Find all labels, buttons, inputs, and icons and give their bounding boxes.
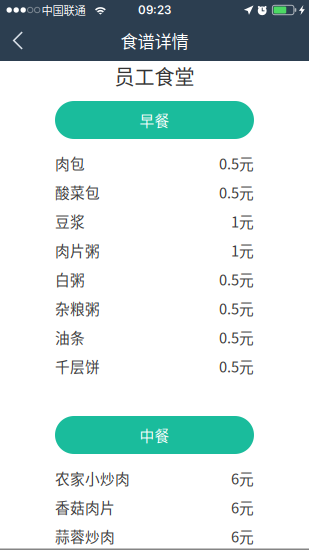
staticText: 杂粮粥 bbox=[55, 297, 100, 319]
button[interactable]: Back bbox=[0, 21, 39, 60]
staticText: 0.5元 bbox=[219, 297, 254, 319]
staticText: 蒜蓉炒肉 bbox=[55, 525, 115, 547]
staticText: 肉片粥 bbox=[55, 239, 100, 261]
staticText: 酸菜包 bbox=[55, 181, 100, 203]
staticText: 早餐 bbox=[139, 109, 169, 131]
staticText: 豆浆 bbox=[55, 210, 85, 232]
staticText: 0.5元 bbox=[219, 355, 254, 377]
staticText: 6元 bbox=[231, 525, 254, 547]
staticText: 0.5元 bbox=[219, 268, 254, 290]
staticText: 09:23 bbox=[138, 3, 171, 17]
staticText: 食谱详情 bbox=[120, 28, 188, 53]
staticText: 肉包 bbox=[55, 152, 85, 174]
staticText: 6元 bbox=[231, 467, 254, 489]
staticText: 0.5元 bbox=[219, 181, 254, 203]
staticText: 千层饼 bbox=[55, 355, 100, 377]
staticText: 中国联通 bbox=[41, 2, 85, 18]
button[interactable]: 早餐 bbox=[55, 101, 254, 139]
staticText: 0.5元 bbox=[219, 152, 254, 174]
staticText: 1元 bbox=[231, 239, 254, 261]
staticText: 油条 bbox=[55, 326, 85, 348]
staticText: 中餐 bbox=[139, 424, 169, 446]
staticText: 农家小炒肉 bbox=[55, 467, 130, 489]
staticText: 员工食堂 bbox=[114, 61, 194, 90]
staticText: 0.5元 bbox=[219, 326, 254, 348]
staticText: 香菇肉片 bbox=[55, 496, 115, 518]
staticText: 白粥 bbox=[55, 268, 85, 290]
staticText: 6元 bbox=[231, 496, 254, 518]
button[interactable]: 中餐 bbox=[55, 416, 254, 454]
staticText: 1元 bbox=[231, 210, 254, 232]
